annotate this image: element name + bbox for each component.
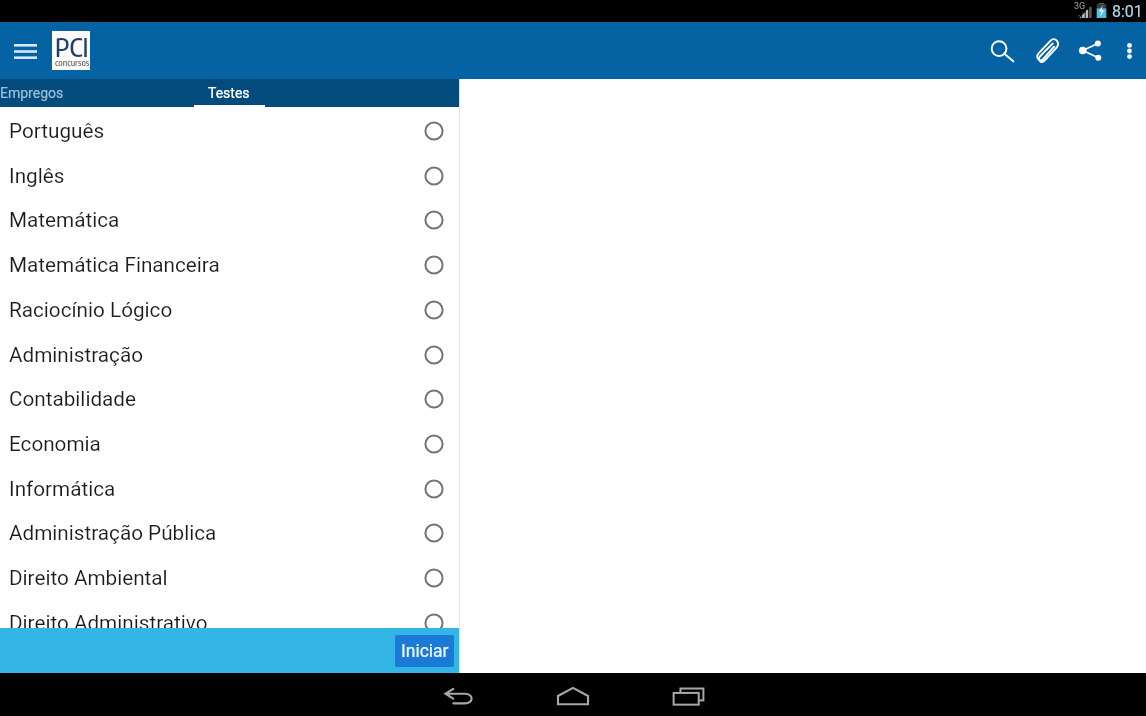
- button[interactable]: Direito Ambiental: [0, 554, 459, 599]
- staticText: Raciocínio Lógico: [9, 298, 173, 322]
- button[interactable]: Administração: [0, 331, 459, 376]
- button[interactable]: Economia: [0, 420, 459, 465]
- button[interactable]: Iniciar: [395, 635, 454, 667]
- staticText: Contabilidade: [9, 387, 136, 411]
- button[interactable]: Contabilidade: [0, 375, 459, 420]
- staticText: Administração: [9, 343, 143, 367]
- button[interactable]: Home: [545, 676, 601, 716]
- staticText: Empregos: [0, 85, 64, 101]
- button[interactable]: Open navigation drawer: [2, 22, 48, 79]
- staticText: Testes: [208, 85, 250, 101]
- button[interactable]: Testes: [129, 79, 329, 107]
- staticText: Economia: [9, 432, 101, 456]
- staticText: 3G: [1074, 1, 1086, 12]
- button[interactable]: Português: [0, 107, 459, 152]
- button[interactable]: Recent apps: [660, 676, 716, 716]
- staticText: Português: [9, 119, 105, 143]
- button[interactable]: Raciocínio Lógico: [0, 286, 459, 331]
- staticText: 8:01: [1112, 2, 1143, 21]
- button[interactable]: PCI Concursos home: [52, 31, 90, 70]
- button[interactable]: Administração Pública: [0, 509, 459, 554]
- staticText: concursos: [55, 57, 90, 68]
- staticText: Matemática: [9, 208, 120, 232]
- staticText: Direito Administrativo: [9, 611, 208, 635]
- staticText: Administração Pública: [9, 521, 217, 545]
- button[interactable]: Search: [980, 22, 1024, 79]
- staticText: Iniciar: [401, 641, 449, 662]
- button[interactable]: Matemática: [0, 196, 459, 241]
- button[interactable]: Empregos: [0, 79, 64, 107]
- staticText: PCI: [55, 31, 90, 62]
- button[interactable]: Matemática Financeira: [0, 241, 459, 286]
- button[interactable]: Direito Constitucional: [0, 643, 459, 673]
- button[interactable]: Direito Administrativo: [0, 599, 459, 644]
- button[interactable]: Inglês: [0, 152, 459, 197]
- button[interactable]: Back: [430, 676, 487, 716]
- staticText: Direito Ambiental: [9, 566, 168, 590]
- button[interactable]: Informática: [0, 465, 459, 510]
- button[interactable]: More options: [1112, 22, 1146, 79]
- button[interactable]: Attach file: [1024, 22, 1068, 79]
- staticText: Informática: [9, 477, 116, 501]
- staticText: Matemática Financeira: [9, 253, 220, 277]
- staticText: Inglês: [9, 164, 65, 188]
- button[interactable]: Share: [1068, 22, 1112, 79]
